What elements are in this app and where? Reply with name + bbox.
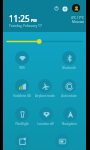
staticText: Flashlight — [15, 122, 29, 126]
button[interactable]: Quick setting — [48, 132, 76, 150]
button[interactable]: Auto rotate — [55, 77, 83, 101]
staticText: Navigation — [62, 122, 77, 126]
staticText: Tuesday, February 17 — [9, 23, 42, 27]
staticText: Location off — [37, 122, 54, 126]
button[interactable]: Brightness — [3, 34, 86, 49]
button[interactable]: Airplane mode — [31, 77, 59, 101]
button[interactable]: Settings — [60, 4, 69, 13]
staticText: Wifi — [19, 66, 25, 70]
staticText: 11:25 — [9, 13, 30, 24]
button[interactable]: Quick setting — [8, 132, 36, 150]
staticText: Auto rotate — [61, 94, 77, 98]
button[interactable]: Profile — [72, 4, 80, 12]
staticText: Bluetooth — [62, 66, 76, 70]
staticText: PM — [31, 18, 37, 23]
button[interactable]: Vodafone 4G — [8, 77, 36, 101]
staticText: Airplane mode — [35, 94, 55, 98]
button[interactable]: Wifi — [8, 49, 36, 73]
staticText: 4°C / 7°C — [71, 16, 84, 20]
button[interactable]: Power — [52, 4, 61, 13]
button[interactable]: Navigation — [55, 105, 83, 129]
staticText: Moscow — [72, 20, 84, 24]
button[interactable]: Bluetooth — [55, 49, 83, 73]
staticText: Vodafone 4G — [13, 94, 31, 98]
button[interactable]: Location off — [31, 105, 59, 129]
button[interactable]: Flashlight — [8, 105, 36, 129]
